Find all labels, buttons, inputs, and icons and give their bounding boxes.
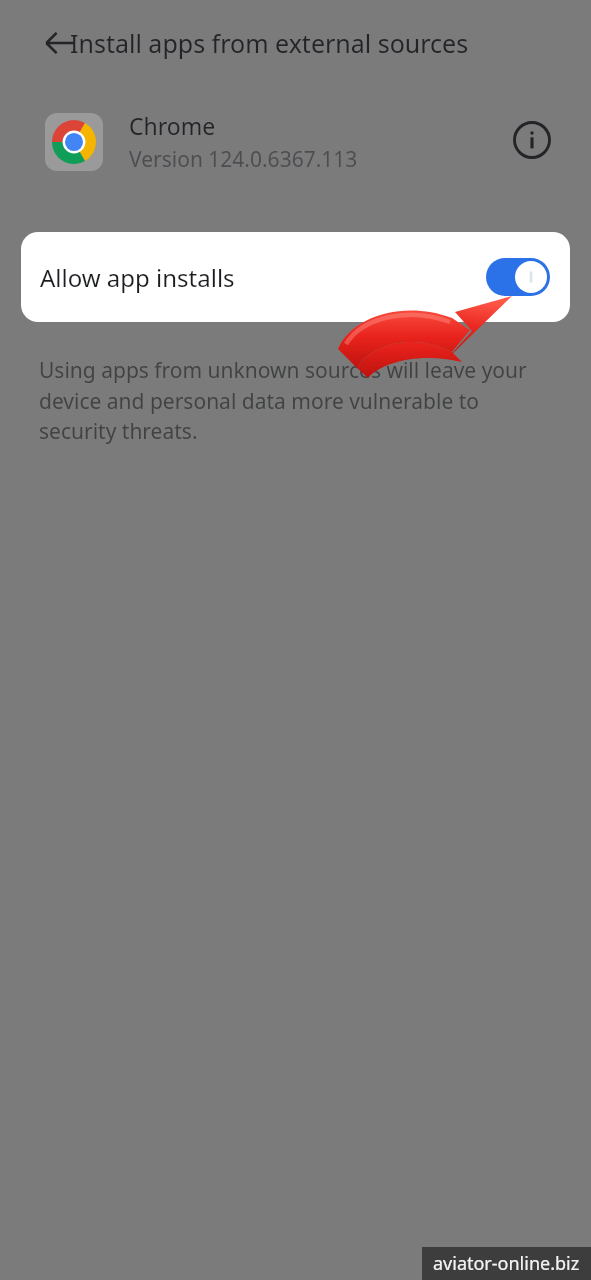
staticText: aviator-online.biz	[433, 1251, 580, 1276]
button[interactable]: Back	[32, 15, 88, 71]
staticText: Allow app installs	[40, 261, 235, 294]
staticText: Version 124.0.6367.113	[129, 145, 358, 174]
button[interactable]: App info	[504, 112, 560, 168]
staticText: Install apps from external sources	[70, 26, 469, 60]
staticText: Using apps from unknown sources will lea…	[39, 356, 559, 445]
button[interactable]: Allow app installs	[21, 232, 570, 322]
staticText: Chrome	[129, 110, 216, 141]
button[interactable]: Chrome	[45, 104, 358, 180]
other: Allow app installs toggle, on	[486, 258, 550, 296]
